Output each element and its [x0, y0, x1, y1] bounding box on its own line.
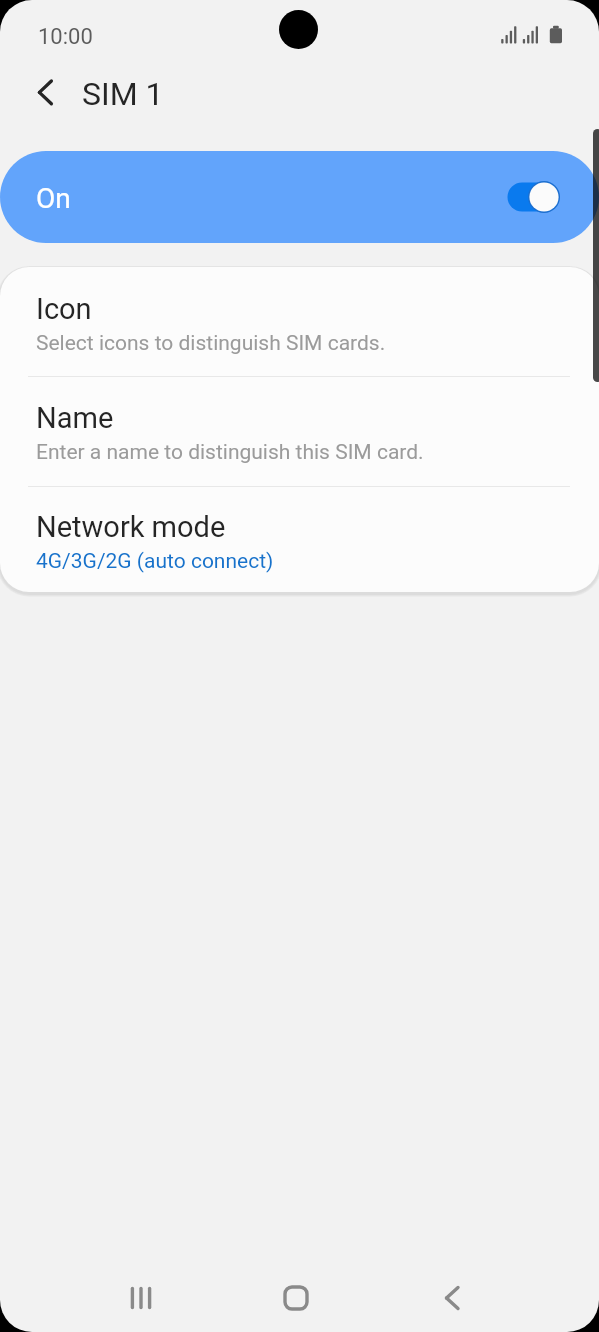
button[interactable]: On	[0, 151, 599, 243]
staticText: Name	[36, 401, 114, 435]
button[interactable]: Navigate up	[22, 69, 68, 115]
staticText: 10:00	[38, 24, 93, 50]
button[interactable]: Icon	[0, 267, 599, 376]
staticText: Network mode	[36, 510, 226, 544]
button[interactable]: Back	[422, 1268, 482, 1328]
button[interactable]: Home	[266, 1268, 326, 1328]
staticText: Select icons to distinguish SIM cards.	[36, 331, 386, 356]
button[interactable]: Name	[0, 377, 599, 486]
staticText: Icon	[36, 292, 92, 326]
other: Turn SIM 1 off	[505, 180, 563, 214]
staticText: On	[36, 182, 71, 215]
staticText: Enter a name to distinguish this SIM car…	[36, 440, 424, 465]
staticText: 4G/3G/2G (auto connect)	[36, 549, 274, 574]
staticText: SIM 1	[82, 75, 164, 113]
button[interactable]: Network mode	[0, 487, 599, 592]
button[interactable]: Recent apps	[111, 1268, 171, 1328]
